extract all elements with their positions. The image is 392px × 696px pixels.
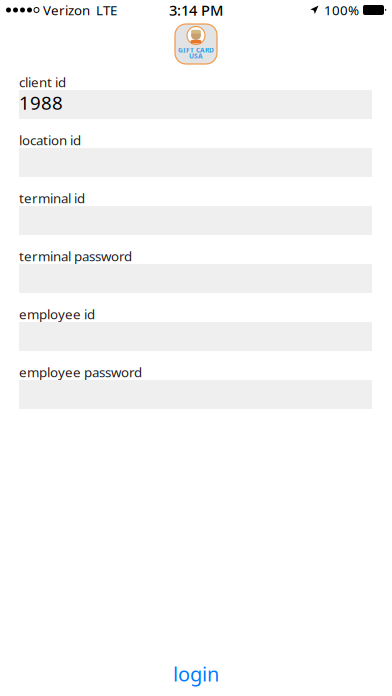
staticText: 3:14 PM [169, 0, 223, 20]
button[interactable]: client id [19, 90, 372, 119]
staticText: Verizon [43, 1, 90, 19]
staticText: terminal id [19, 189, 85, 207]
staticText: location id [19, 131, 81, 149]
button[interactable]: login [0, 652, 392, 695]
staticText: employee id [19, 305, 95, 323]
staticText: LTE [96, 1, 117, 19]
staticText: GIFT CARD [178, 46, 214, 54]
staticText: 1988 [19, 90, 63, 115]
staticText: employee password [19, 363, 142, 381]
staticText: USA [189, 52, 203, 60]
staticText: 100% [324, 1, 359, 19]
staticText: client id [19, 73, 66, 91]
staticText: login [173, 660, 219, 687]
staticText: terminal password [19, 247, 132, 265]
